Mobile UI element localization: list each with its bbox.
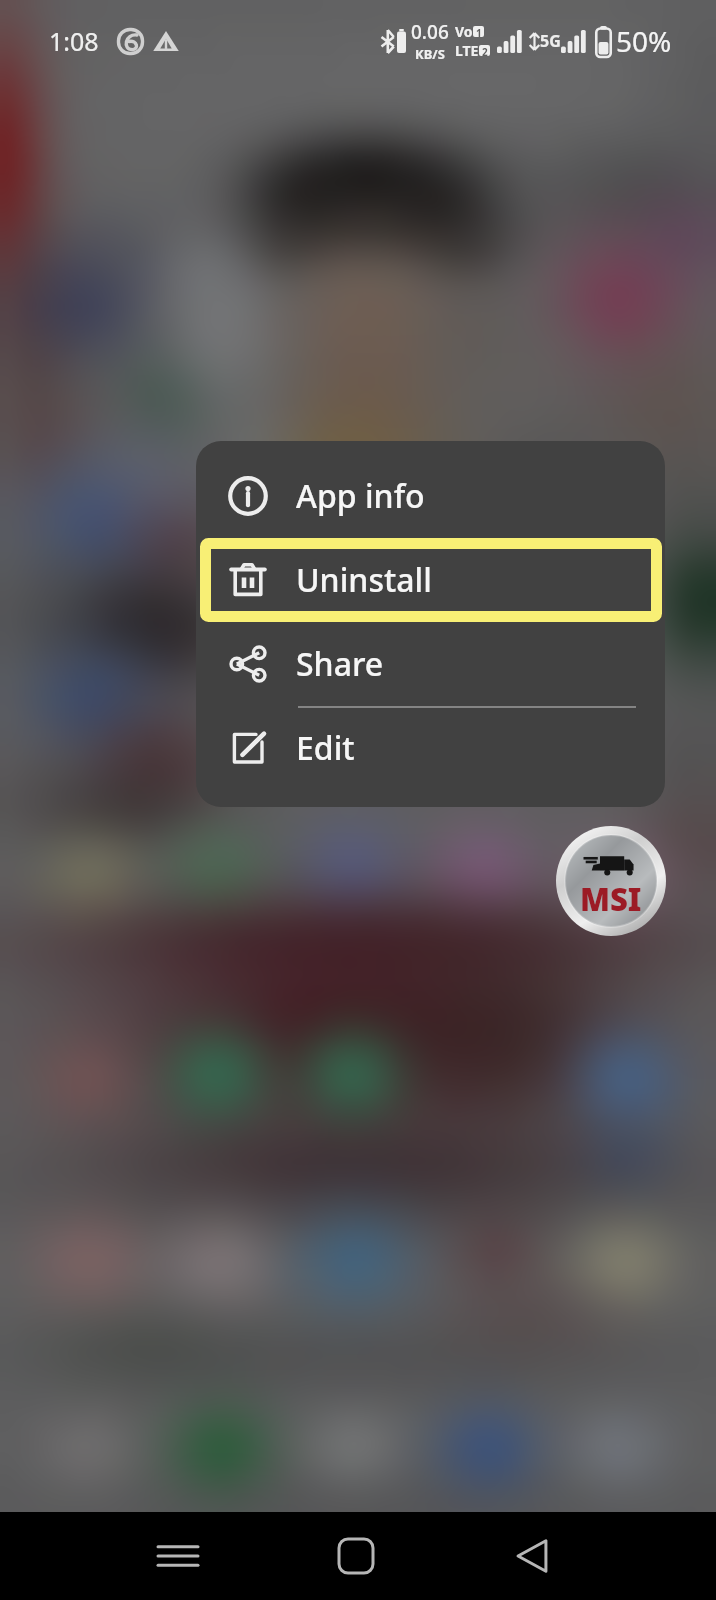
button[interactable]: Edit xyxy=(196,706,665,790)
button[interactable]: Uninstall xyxy=(196,538,665,622)
staticText: 5G xyxy=(540,30,561,52)
staticText: 0.06 xyxy=(411,19,449,45)
staticText: 50% xyxy=(616,22,672,60)
button[interactable]: Share xyxy=(196,622,665,706)
staticText: 2 xyxy=(482,45,488,56)
staticText: MSI xyxy=(580,878,642,920)
button[interactable]: Recent apps xyxy=(138,1512,218,1600)
staticText: LTE xyxy=(455,41,479,60)
button[interactable]: Home xyxy=(316,1512,396,1600)
button[interactable]: Back xyxy=(493,1512,573,1600)
staticText: Edit xyxy=(296,726,355,770)
button[interactable]: App info xyxy=(196,454,665,538)
staticText: KB/S xyxy=(415,45,445,63)
staticText: Share xyxy=(296,642,384,686)
staticText: App info xyxy=(296,474,425,518)
staticText: Uninstall xyxy=(296,558,432,602)
staticText: Vo xyxy=(455,22,473,41)
staticText: 1 xyxy=(476,26,482,37)
button[interactable]: MSI app icon xyxy=(556,826,666,936)
staticText: 1:08 xyxy=(49,24,99,58)
